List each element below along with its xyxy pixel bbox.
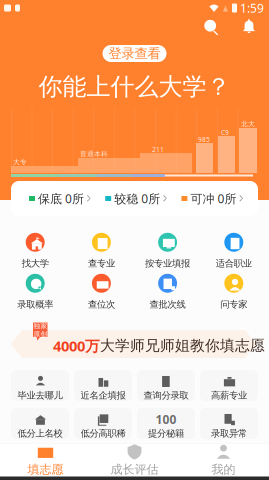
staticText: 4000万 — [53, 336, 100, 355]
staticText: 保底 0所 — [38, 190, 84, 206]
button[interactable]: 通知 — [235, 16, 263, 38]
button[interactable]: 我的 — [179, 444, 268, 476]
button[interactable]: 100 — [137, 408, 195, 439]
staticText: 独家 — [33, 322, 47, 330]
staticText: 原创 — [33, 330, 47, 338]
button[interactable]: 找大学 — [4, 234, 66, 268]
staticText: 查专业 — [88, 258, 115, 269]
staticText: 100 — [155, 411, 176, 427]
button[interactable]: 低分高职稀 — [74, 408, 132, 439]
staticText: 大学师兄师姐教你填志愿 — [100, 337, 265, 355]
staticText: 985 — [198, 135, 210, 144]
staticText: 成长评估 — [110, 462, 158, 477]
button[interactable]: 按专业填报 — [137, 234, 199, 268]
staticText: 查询分录取 — [143, 390, 188, 401]
staticText: 低分高职稀 — [80, 428, 125, 439]
staticText: 1:59 — [240, 0, 264, 16]
staticText: 按专业填报 — [145, 258, 190, 269]
staticText: 找大学 — [22, 258, 49, 269]
staticText: 你能上什么大学？ — [38, 72, 230, 101]
button[interactable]: 搜索 — [197, 16, 225, 38]
button[interactable]: 适合职业 — [203, 234, 265, 268]
staticText: 可冲 0所 — [190, 190, 236, 206]
button[interactable]: 较稳 0所 — [105, 181, 167, 216]
staticText: 问专家 — [220, 299, 247, 310]
staticText: 登录查看 — [108, 45, 160, 62]
staticText: 查位次 — [88, 299, 115, 310]
button[interactable]: 问专家 — [203, 275, 265, 309]
button[interactable]: 查批次线 — [137, 275, 199, 309]
staticText: 大专 — [13, 158, 27, 166]
button[interactable]: 查位次 — [70, 275, 132, 309]
staticText: 录取异常 — [211, 428, 247, 439]
staticText: C9 — [221, 128, 229, 137]
button[interactable]: 录取概率 — [4, 275, 66, 309]
staticText: 较稳 0所 — [114, 190, 160, 206]
staticText: 填志愿 — [27, 462, 63, 477]
staticText: 211 — [152, 145, 164, 154]
staticText: 高薪专业 — [211, 390, 247, 401]
staticText: 录取概率 — [17, 299, 53, 310]
button[interactable]: 填志愿 — [1, 444, 90, 476]
button[interactable]: 录取异常 — [200, 408, 258, 439]
staticText: 普通本科 — [80, 150, 108, 158]
button[interactable]: 查专业 — [70, 234, 132, 268]
button[interactable]: 保底 0所 — [29, 181, 91, 216]
staticText: 毕业去哪儿 — [17, 390, 62, 401]
button[interactable]: 高薪专业 — [200, 370, 258, 401]
staticText: 提分秘籍 — [148, 428, 184, 439]
button[interactable]: 成长评估 — [90, 444, 179, 476]
button[interactable]: 低分上名校 — [11, 408, 69, 439]
staticText: 低分上名校 — [17, 428, 62, 439]
staticText: 近名企填报 — [80, 390, 125, 401]
button[interactable]: 登录查看 — [102, 45, 166, 62]
button[interactable]: 毕业去哪儿 — [11, 370, 69, 401]
staticText: 北大 — [241, 120, 255, 128]
staticText: 适合职业 — [216, 258, 252, 269]
staticText: 我的 — [211, 462, 235, 477]
button[interactable]: 近名企填报 — [74, 370, 132, 401]
staticText: 查批次线 — [150, 299, 186, 310]
button[interactable]: 查询分录取 — [137, 370, 195, 401]
button[interactable]: 独家 — [0, 322, 269, 358]
button[interactable]: 可冲 0所 — [181, 181, 243, 216]
